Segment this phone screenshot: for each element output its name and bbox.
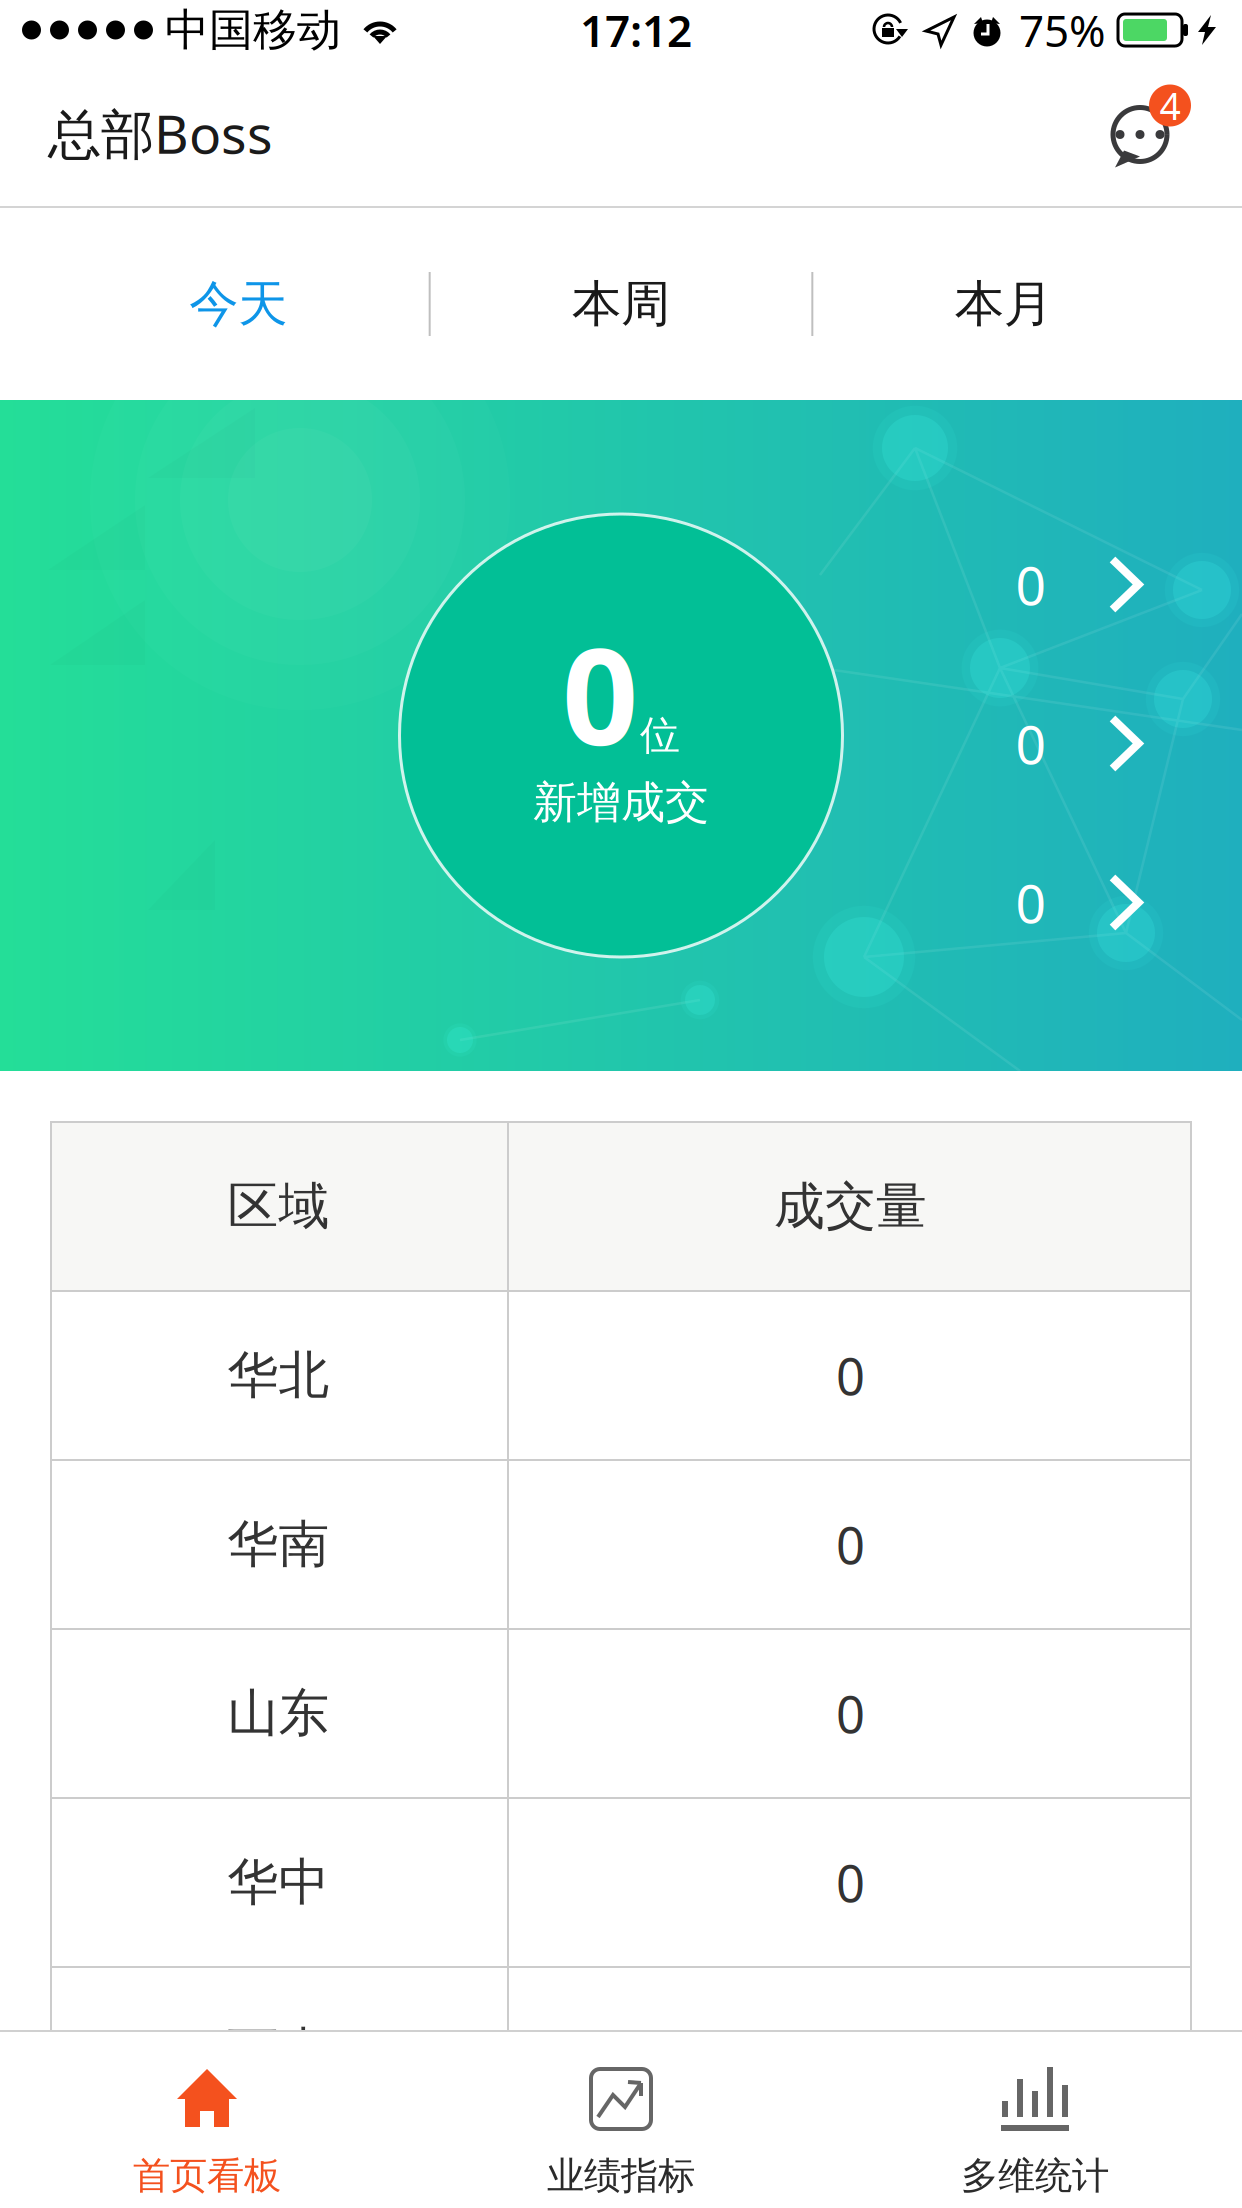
staticText: 区域 xyxy=(227,1175,329,1238)
button[interactable]: 多维统计 xyxy=(828,2032,1242,2208)
button[interactable]: 消息 xyxy=(1082,67,1194,199)
staticText: 0 xyxy=(836,1680,865,1747)
button[interactable]: 首页看板 xyxy=(0,2032,414,2208)
staticText: 0 xyxy=(836,2018,865,2085)
staticText: 4 xyxy=(1159,81,1180,130)
staticText: 华中 xyxy=(227,1851,329,1914)
staticText: 成交量 xyxy=(774,1175,927,1238)
staticText: 华北 xyxy=(227,1344,329,1407)
staticText: 17:12 xyxy=(580,1,692,59)
staticText: 总部Boss xyxy=(48,98,273,168)
staticText: 西南 xyxy=(227,2020,329,2083)
button[interactable]: 业绩指标 xyxy=(414,2032,828,2208)
staticText: 业绩指标 xyxy=(547,2153,695,2199)
button[interactable]: 查看详情 xyxy=(992,866,1167,938)
staticText: 0 xyxy=(836,1511,865,1578)
button[interactable]: 查看详情 xyxy=(992,548,1167,620)
staticText: 位 xyxy=(640,711,680,760)
staticText: 0 xyxy=(1015,867,1046,938)
staticText: 首页看板 xyxy=(133,2153,281,2199)
staticText: 中国移动 xyxy=(165,3,341,57)
button[interactable]: 本周 xyxy=(431,208,811,400)
button[interactable]: 查看详情 xyxy=(992,707,1167,779)
staticText: 华南 xyxy=(227,1513,329,1576)
staticText: 0 xyxy=(1015,708,1046,779)
staticText: 本周 xyxy=(572,274,670,334)
staticText: 0 xyxy=(836,1342,865,1409)
staticText: 75% xyxy=(1019,1,1106,59)
staticText: 0 xyxy=(1015,549,1046,620)
button[interactable]: 本月 xyxy=(813,208,1194,400)
staticText: 山东 xyxy=(227,1682,329,1745)
staticText: 今天 xyxy=(189,274,287,334)
staticText: 多维统计 xyxy=(961,2153,1109,2199)
staticText: 新增成交 xyxy=(533,775,709,829)
button[interactable]: 今天 xyxy=(48,208,429,400)
staticText: 0 xyxy=(836,1849,865,1916)
staticText: 本月 xyxy=(955,274,1053,334)
staticText: 0 xyxy=(562,605,638,782)
